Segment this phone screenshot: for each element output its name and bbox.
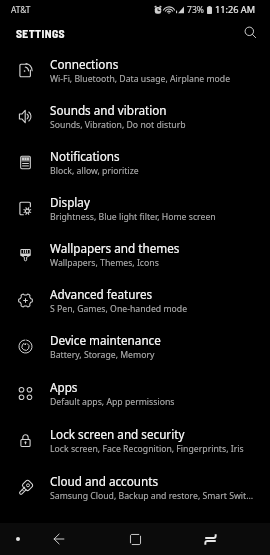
staticText: Block, allow, prioritize (50, 165, 139, 177)
button[interactable]: Cloud and accounts (0, 464, 270, 511)
button[interactable]: Recents (180, 523, 240, 555)
staticText: Notifications (50, 148, 120, 164)
button[interactable]: Notifications (0, 139, 270, 185)
staticText: Wallpapers, Themes, Icons (50, 257, 159, 269)
staticText: Battery, Storage, Memory (50, 349, 155, 361)
staticText: 11:26 AM (215, 3, 256, 16)
staticText: Samsung Cloud, Backup and restore, Smart… (50, 490, 254, 502)
staticText: Apps (50, 379, 78, 395)
staticText: Device maintenance (50, 332, 161, 348)
staticText: Wi-Fi, Bluetooth, Data usage, Airplane m… (50, 73, 231, 85)
button[interactable]: Device maintenance (0, 323, 270, 370)
button[interactable]: Connections (0, 47, 270, 93)
staticText: SETTINGS (16, 26, 65, 40)
button[interactable]: Display (0, 185, 270, 231)
button[interactable]: Wallpapers and themes (0, 231, 270, 277)
staticText: Lock screen, Face Recognition, Fingerpri… (50, 443, 244, 455)
staticText: Default apps, App permissions (50, 396, 175, 408)
staticText: Advanced features (50, 286, 153, 302)
staticText: Sounds, Vibration, Do not disturb (50, 119, 186, 131)
staticText: Wallpapers and themes (50, 240, 180, 256)
button[interactable]: Home (98, 523, 172, 555)
staticText: S Pen, Games, One-handed mode (50, 303, 188, 315)
button[interactable]: Back (36, 523, 82, 555)
button[interactable]: Advanced features (0, 277, 270, 323)
staticText: AT&T (11, 4, 31, 15)
button[interactable]: Search (236, 18, 264, 46)
staticText: Brightness, Blue light filter, Home scre… (50, 211, 216, 223)
staticText: Cloud and accounts (50, 473, 159, 489)
staticText: Connections (50, 56, 119, 72)
staticText: Display (50, 194, 90, 210)
staticText: 73% (187, 4, 204, 16)
button[interactable]: Sounds and vibration (0, 93, 270, 139)
button[interactable]: Notifications (0, 523, 36, 555)
button[interactable]: Lock screen and security (0, 417, 270, 464)
button[interactable]: Apps (0, 370, 270, 417)
staticText: Sounds and vibration (50, 102, 167, 118)
staticText: Lock screen and security (50, 426, 185, 442)
